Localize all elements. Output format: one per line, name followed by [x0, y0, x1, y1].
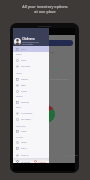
staticText: Support — [21, 141, 28, 143]
button[interactable]: Settings — [13, 158, 49, 164]
staticText: Invoice — [21, 59, 27, 61]
button[interactable]: Support — [13, 139, 49, 145]
staticText: Sr. Clerk Report — [21, 112, 33, 114]
staticText: My Account — [16, 137, 24, 139]
staticText: Inventory — [16, 73, 22, 75]
staticText: Employees — [21, 101, 30, 103]
staticText: Ordering — [16, 54, 22, 56]
staticText: Report — [21, 84, 27, 86]
button[interactable]: Transfer — [13, 88, 49, 94]
staticText: Salary Report — [21, 118, 32, 120]
staticText: Settings — [21, 160, 31, 163]
staticText: Employees — [16, 96, 23, 98]
staticText: Reports — [16, 107, 21, 109]
button[interactable]: Cash Memo — [13, 63, 49, 69]
staticText: Logout — [38, 160, 47, 163]
staticText: All your inventory options at one place — [0, 4, 90, 14]
staticText: Inventory report — [61, 154, 78, 157]
button[interactable]: What's Up — [13, 152, 49, 158]
staticText: Home — [21, 48, 26, 50]
button[interactable]: Invoice — [13, 57, 49, 63]
staticText: Stock — [49, 51, 55, 54]
staticText: Inventory — [21, 78, 29, 80]
staticText: Stock Engineer — [22, 43, 34, 45]
button[interactable]: Sr. Clerk Report — [13, 110, 49, 116]
staticText: This data for 2019 — [50, 78, 69, 81]
staticText: Transfer — [21, 90, 28, 92]
staticText: Chidimma — [22, 37, 35, 41]
staticText: What's Up — [21, 154, 29, 156]
button[interactable]: Inventory — [13, 76, 49, 82]
button[interactable]: Employees — [13, 99, 49, 105]
staticText: Classes — [21, 130, 27, 132]
button[interactable]: Salary Report — [13, 116, 49, 122]
button[interactable]: Home — [13, 46, 49, 52]
staticText: Cash Memo — [21, 65, 30, 67]
staticText: Communication — [16, 126, 26, 128]
button[interactable]: Rate Us — [13, 145, 49, 151]
staticText: chidimma@gmail.com — [22, 41, 39, 43]
button[interactable]: Classes — [13, 128, 49, 134]
staticText: Rate Us — [21, 147, 27, 149]
button[interactable]: Report — [13, 82, 49, 88]
